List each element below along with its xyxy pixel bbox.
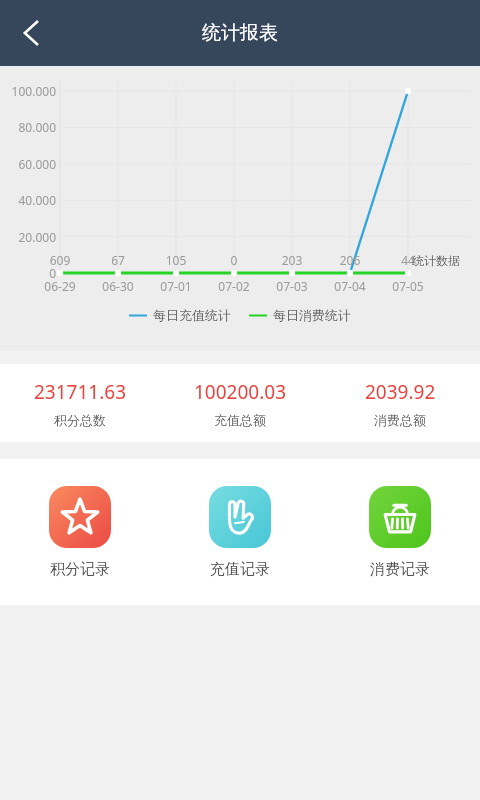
staticText: 充值总额 xyxy=(214,412,266,428)
staticText: 100200.03 xyxy=(194,379,287,405)
staticText: 0 xyxy=(206,252,262,268)
staticText: 每日充值统计 xyxy=(153,307,231,323)
staticText: 06-29 xyxy=(30,278,90,294)
staticText: 203 xyxy=(264,252,320,268)
staticText: 07-01 xyxy=(146,278,206,294)
staticText: 充值记录 xyxy=(210,560,270,579)
staticText: 07-04 xyxy=(320,278,380,294)
staticText: 60.000 xyxy=(4,156,56,172)
button[interactable]: 2039.92 xyxy=(320,364,480,442)
staticText: 20.000 xyxy=(4,229,56,245)
staticText: 消费总额 xyxy=(374,412,426,428)
button[interactable]: 积分记录 xyxy=(0,459,160,605)
staticText: 06-30 xyxy=(88,278,148,294)
staticText: 07-03 xyxy=(262,278,322,294)
staticText: 消费记录 xyxy=(370,560,430,579)
staticText: 80.000 xyxy=(4,119,56,135)
staticText: 统计报表 xyxy=(202,21,278,45)
button[interactable]: 消费记录 xyxy=(320,459,480,605)
button[interactable]: 充值记录 xyxy=(160,459,320,605)
staticText: 07-02 xyxy=(204,278,264,294)
staticText: 2039.92 xyxy=(365,379,436,405)
staticText: 每日消费统计 xyxy=(273,307,351,323)
staticText: 67 xyxy=(90,252,146,268)
staticText: 40.000 xyxy=(4,192,56,208)
staticText: 积分总数 xyxy=(54,412,106,428)
staticText: 609 xyxy=(32,252,88,268)
button[interactable]: 231711.63 xyxy=(0,364,160,442)
staticText: 44 xyxy=(380,252,436,268)
button[interactable]: 100200.03 xyxy=(160,364,320,442)
staticText: 07-05 xyxy=(378,278,438,294)
staticText: 0 xyxy=(4,265,56,281)
staticText: 206 xyxy=(322,252,378,268)
staticText: 统计数据 xyxy=(412,253,460,268)
staticText: 231711.63 xyxy=(34,379,127,405)
staticText: 100.000 xyxy=(4,83,56,99)
staticText: 105 xyxy=(148,252,204,268)
staticText: 积分记录 xyxy=(50,560,110,579)
button[interactable]: Back xyxy=(4,5,60,61)
